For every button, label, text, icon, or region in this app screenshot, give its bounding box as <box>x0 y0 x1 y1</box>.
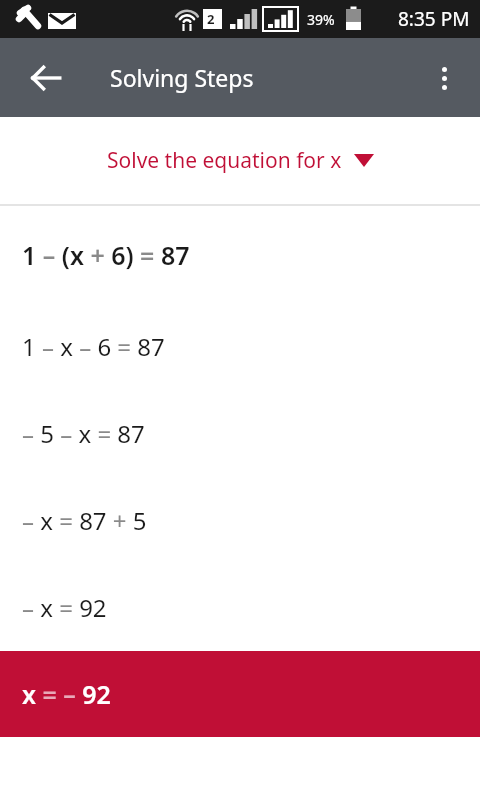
staticText: 39% <box>307 10 335 29</box>
button[interactable]: – x = 87 + 5 <box>0 450 480 537</box>
button[interactable]: Navigate up <box>18 50 74 106</box>
button[interactable]: 1 – (x + 6) = 87 <box>0 206 480 272</box>
button[interactable]: 1 – x – 6 = 87 <box>0 272 480 363</box>
staticText: 8:35 PM <box>398 6 470 32</box>
staticText: 1 – x – 6 = 87 <box>22 330 165 363</box>
button[interactable]: x = – 92 <box>0 651 480 737</box>
staticText: – 5 – x = 87 <box>22 417 145 450</box>
staticText: 2 <box>207 10 215 28</box>
staticText: Solving Steps <box>110 62 254 93</box>
button[interactable]: More options <box>416 50 472 106</box>
button[interactable]: – 5 – x = 87 <box>0 363 480 450</box>
staticText: – x = 92 <box>22 591 107 624</box>
staticText: x = – 92 <box>22 677 111 711</box>
staticText: Solve the equation for x <box>107 146 342 175</box>
staticText: 1 – (x + 6) = 87 <box>22 238 190 272</box>
button[interactable]: – x = 92 <box>0 537 480 624</box>
staticText: – x = 87 + 5 <box>22 504 147 537</box>
button[interactable]: Solve the equation for x <box>0 117 480 204</box>
